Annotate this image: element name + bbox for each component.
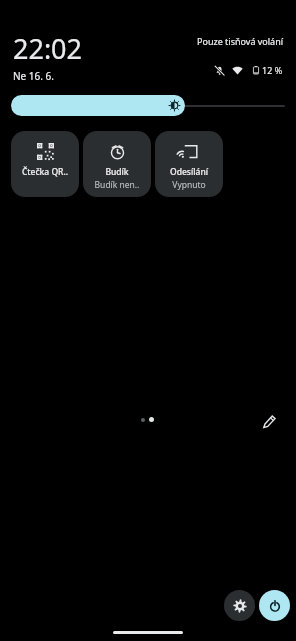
staticText: Pouze tisňová volání — [197, 35, 284, 47]
staticText: Ne 16. 6. — [13, 69, 54, 83]
button[interactable]: Upravit dlaždice — [253, 405, 285, 437]
staticText: Vypnuto — [155, 179, 223, 191]
staticText: 22:02 — [13, 30, 83, 67]
button[interactable]: Čtečka QR.. — [11, 131, 79, 197]
button[interactable]: Odesílání — [155, 131, 223, 197]
staticText: Budík — [83, 166, 151, 178]
staticText: Čtečka QR.. — [11, 166, 79, 178]
staticText: Budík nen.. — [83, 179, 151, 191]
button[interactable]: Budík — [83, 131, 151, 197]
button[interactable]: Nastavení — [224, 590, 255, 621]
button[interactable]: Jasnost — [11, 95, 285, 116]
staticText: 12 % — [262, 64, 283, 76]
button[interactable]: Vypnout — [259, 590, 290, 621]
staticText: Odesílání — [155, 166, 223, 178]
